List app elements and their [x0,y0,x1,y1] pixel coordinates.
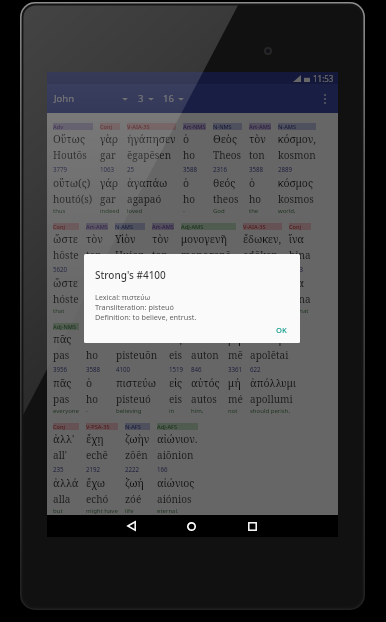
staticText: N-AMS [278,123,297,130]
staticText: gar [100,148,116,162]
staticText: 1519 [169,365,184,373]
staticText: αὐτὸν [191,332,220,346]
button[interactable]: More options [314,88,336,110]
button[interactable]: N-AMS [278,123,316,216]
staticText: ho [183,192,196,206]
button[interactable]: N-AMS [115,223,145,316]
button[interactable]: 16 [161,88,186,109]
staticText: OK [276,325,287,335]
button[interactable]: N-AFS [125,423,150,516]
staticText: Definition: to believe, entrust. [95,312,197,322]
button[interactable]: Art-NMS [183,123,206,216]
button[interactable]: Back [119,515,143,537]
staticText: ho [249,192,262,206]
staticText: autos [191,392,217,406]
button[interactable]: Art-AMS [152,223,174,316]
button[interactable]: Art-NMS [86,323,109,416]
staticText: Conj [53,423,65,430]
staticText: αἰώνιος [157,476,195,490]
staticText: pisteuōn [116,348,158,362]
button[interactable]: Conj [53,423,79,516]
staticText: ὁ [152,276,159,290]
staticText: ἔχω [86,476,106,490]
button[interactable]: Home [179,515,203,537]
staticText: ζωή [125,476,144,490]
button[interactable]: V-PPA-NMS [116,323,162,416]
staticText: πᾶς [53,332,72,346]
staticText: Transliteration: pisteuó [95,302,174,312]
button[interactable]: V-AIA-3S [243,223,282,316]
staticText: 1063 [100,165,115,173]
staticText: 3588 [249,165,264,173]
staticText: hina [289,248,311,262]
staticText: all' [53,448,68,462]
button[interactable]: PPro-AM3S [191,323,221,416]
staticText: mé [228,392,243,406]
button[interactable]: Adv [53,123,93,216]
staticText: that [53,307,65,315]
staticText: might have [86,507,118,515]
staticText: Huion [115,248,145,262]
staticText: aiónios [157,492,192,506]
staticText: but [53,507,63,515]
staticText: 3779 [53,165,68,173]
staticText: ἀλλ' [53,432,75,446]
button[interactable]: Conj [289,223,311,316]
button[interactable]: Prep [169,323,184,416]
staticText: 3 [138,92,144,105]
staticText: 622 [250,365,261,373]
button[interactable]: V-ASM-3S [250,323,297,416]
staticText: eis [169,392,183,406]
staticText: everyone [53,407,79,415]
staticText: ēgapēsen [127,148,172,162]
staticText: 235 [53,465,64,473]
staticText: zōēn [125,448,148,462]
staticText: γὰρ [100,132,119,146]
button[interactable]: Conj [53,223,79,316]
staticText: ἀπόλλυμι [250,376,296,390]
staticText: eternal. [157,507,179,515]
button[interactable]: Adj-NMS [53,323,79,416]
staticText: 5207 [115,265,130,273]
staticText: γάρ [100,176,119,190]
button[interactable]: Conj [100,123,120,216]
staticText: 16 [163,92,174,105]
button[interactable]: John [47,88,132,109]
button[interactable]: Adv [228,323,243,416]
staticText: N-AFS [125,423,141,430]
button[interactable]: Adj-AMS [181,223,236,316]
button[interactable]: Recents [240,515,264,537]
staticText: κόσμον, [278,132,316,146]
staticText: zóé [125,492,142,506]
staticText: V-AIA-3S [127,123,150,130]
button[interactable]: V-PSA-3S [86,423,118,516]
staticText: huios [115,292,142,306]
staticText: - [152,307,154,315]
staticText: Lexical: πιστεύω [95,292,151,302]
staticText: echó [86,492,109,506]
staticText: ho [152,292,165,306]
staticText: εἰς [169,332,183,346]
staticText: hōste [53,248,79,262]
button[interactable]: Adj-AFS [157,423,198,516]
button[interactable]: N-NMS [213,123,242,216]
staticText: 25 [127,165,135,173]
button[interactable]: 3 [136,88,156,109]
button[interactable]: OK [266,323,300,343]
button[interactable]: Art-AMS [86,223,108,316]
staticText: ὁ [183,176,190,190]
button[interactable]: V-AIA-3S [127,123,176,216]
staticText: 166 [157,465,168,473]
staticText: alla [53,492,71,506]
staticText: him, [191,407,204,415]
button[interactable]: Art-AMS [249,123,271,216]
staticText: ho [86,348,99,362]
staticText: πιστεύων [116,332,162,346]
